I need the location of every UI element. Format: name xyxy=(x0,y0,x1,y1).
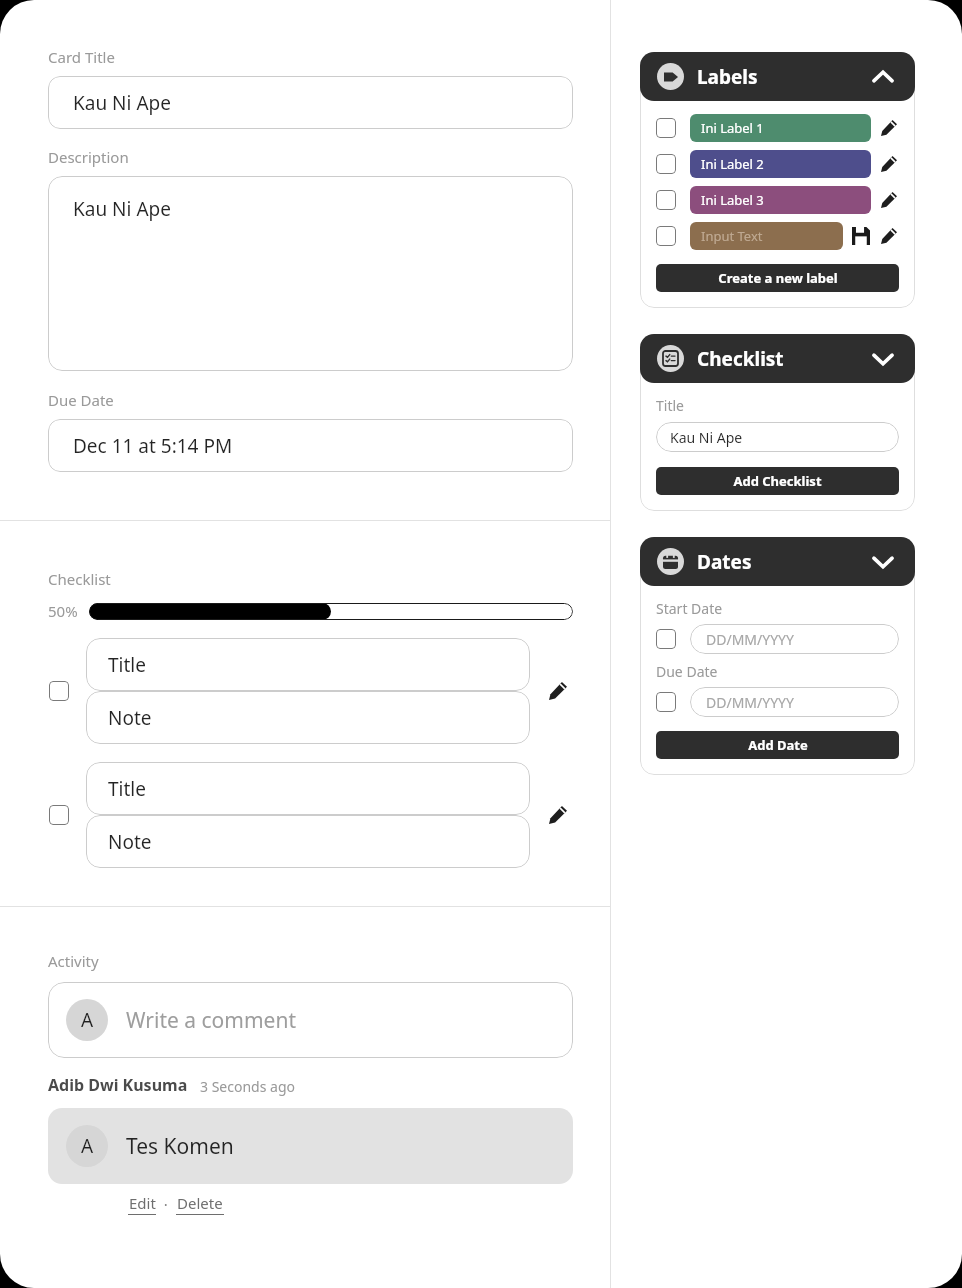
button[interactable]: Dates xyxy=(640,537,915,586)
button[interactable]: Toggle xyxy=(49,805,69,825)
staticText: Activity xyxy=(48,951,99,971)
button[interactable]: Kau Ni Ape xyxy=(656,422,899,452)
button[interactable]: Edit label xyxy=(879,118,899,138)
staticText: Checklist xyxy=(48,569,111,589)
button[interactable]: Checklist xyxy=(640,334,915,383)
button[interactable]: Delete xyxy=(176,1193,224,1215)
staticText: Note xyxy=(108,829,152,855)
staticText: Ini Label 2 xyxy=(701,155,764,173)
staticText: Title xyxy=(108,652,146,678)
staticText: Due Date xyxy=(656,662,718,681)
button[interactable]: Toggle xyxy=(656,629,676,649)
staticText: Tes Komen xyxy=(126,1132,234,1161)
staticText: Create a new label xyxy=(718,269,838,287)
staticText: Dates xyxy=(697,549,752,575)
button[interactable]: Edit label xyxy=(879,190,899,210)
staticText: 50% xyxy=(48,601,78,621)
staticText: A xyxy=(81,1133,94,1159)
staticText: Ini Label 1 xyxy=(701,119,764,137)
other: Collapse xyxy=(868,62,898,92)
button[interactable]: Toggle xyxy=(656,118,676,138)
button[interactable]: Labels xyxy=(640,52,915,101)
staticText: Description xyxy=(48,147,129,167)
staticText: Checklist xyxy=(697,346,784,372)
button[interactable]: Dec 11 at 5:14 PM xyxy=(48,419,573,472)
other: Expand xyxy=(868,344,898,374)
button[interactable]: Ini Label 2 xyxy=(690,150,871,178)
staticText: Adib Dwi Kusuma xyxy=(48,1074,188,1096)
button[interactable]: Note xyxy=(86,691,530,744)
button[interactable]: Title xyxy=(86,762,530,815)
button[interactable]: Edit checklist item xyxy=(543,676,573,706)
staticText: 3 Seconds ago xyxy=(200,1077,295,1096)
button[interactable]: Edit xyxy=(128,1193,156,1215)
button[interactable]: Toggle xyxy=(49,681,69,701)
staticText: Ini Label 3 xyxy=(701,191,764,209)
staticText: Delete xyxy=(177,1193,223,1213)
button[interactable]: DD/MM/YYYY xyxy=(690,624,899,654)
button[interactable]: Title xyxy=(86,638,530,691)
staticText: DD/MM/YYYY xyxy=(706,630,794,649)
button[interactable]: DD/MM/YYYY xyxy=(690,687,899,717)
staticText: Kau Ni Ape xyxy=(73,90,171,116)
button[interactable]: Create a new label xyxy=(656,264,899,292)
button[interactable]: Note xyxy=(86,815,530,868)
button[interactable]: A xyxy=(48,1108,573,1184)
button[interactable]: Add Checklist xyxy=(656,467,899,495)
staticText: Labels xyxy=(697,64,758,90)
staticText: Input Text xyxy=(701,227,763,245)
staticText: Kau Ni Ape xyxy=(670,428,743,447)
staticText: A xyxy=(81,1007,94,1033)
staticText: Due Date xyxy=(48,390,114,410)
button[interactable]: Add Date xyxy=(656,731,899,759)
staticText: Title xyxy=(656,396,684,415)
button[interactable]: Edit label xyxy=(879,226,899,246)
staticText: DD/MM/YYYY xyxy=(706,693,794,712)
button[interactable]: Save label xyxy=(851,226,871,246)
staticText: Edit xyxy=(129,1193,156,1213)
staticText: Add Checklist xyxy=(733,472,822,490)
button[interactable]: Toggle xyxy=(656,154,676,174)
button[interactable]: A xyxy=(48,982,573,1058)
staticText: Card Title xyxy=(48,47,115,67)
button[interactable]: Toggle xyxy=(656,226,676,246)
staticText: Start Date xyxy=(656,599,723,618)
button[interactable]: Edit checklist item xyxy=(543,800,573,830)
button[interactable]: Kau Ni Ape xyxy=(48,76,573,129)
button[interactable]: Edit label xyxy=(879,154,899,174)
staticText: · xyxy=(156,1194,176,1214)
staticText: Kau Ni Ape xyxy=(73,196,171,222)
staticText: Write a comment xyxy=(126,1006,296,1035)
button[interactable]: Input Text xyxy=(690,222,843,250)
staticText: Dec 11 at 5:14 PM xyxy=(73,433,233,459)
button[interactable]: Kau Ni Ape xyxy=(48,176,573,371)
staticText: Title xyxy=(108,776,146,802)
other: Expand xyxy=(868,547,898,577)
button[interactable]: Toggle xyxy=(656,692,676,712)
staticText: Add Date xyxy=(748,736,808,754)
staticText: Note xyxy=(108,705,152,731)
button[interactable]: Ini Label 3 xyxy=(690,186,871,214)
button[interactable]: Ini Label 1 xyxy=(690,114,871,142)
button[interactable]: Toggle xyxy=(656,190,676,210)
